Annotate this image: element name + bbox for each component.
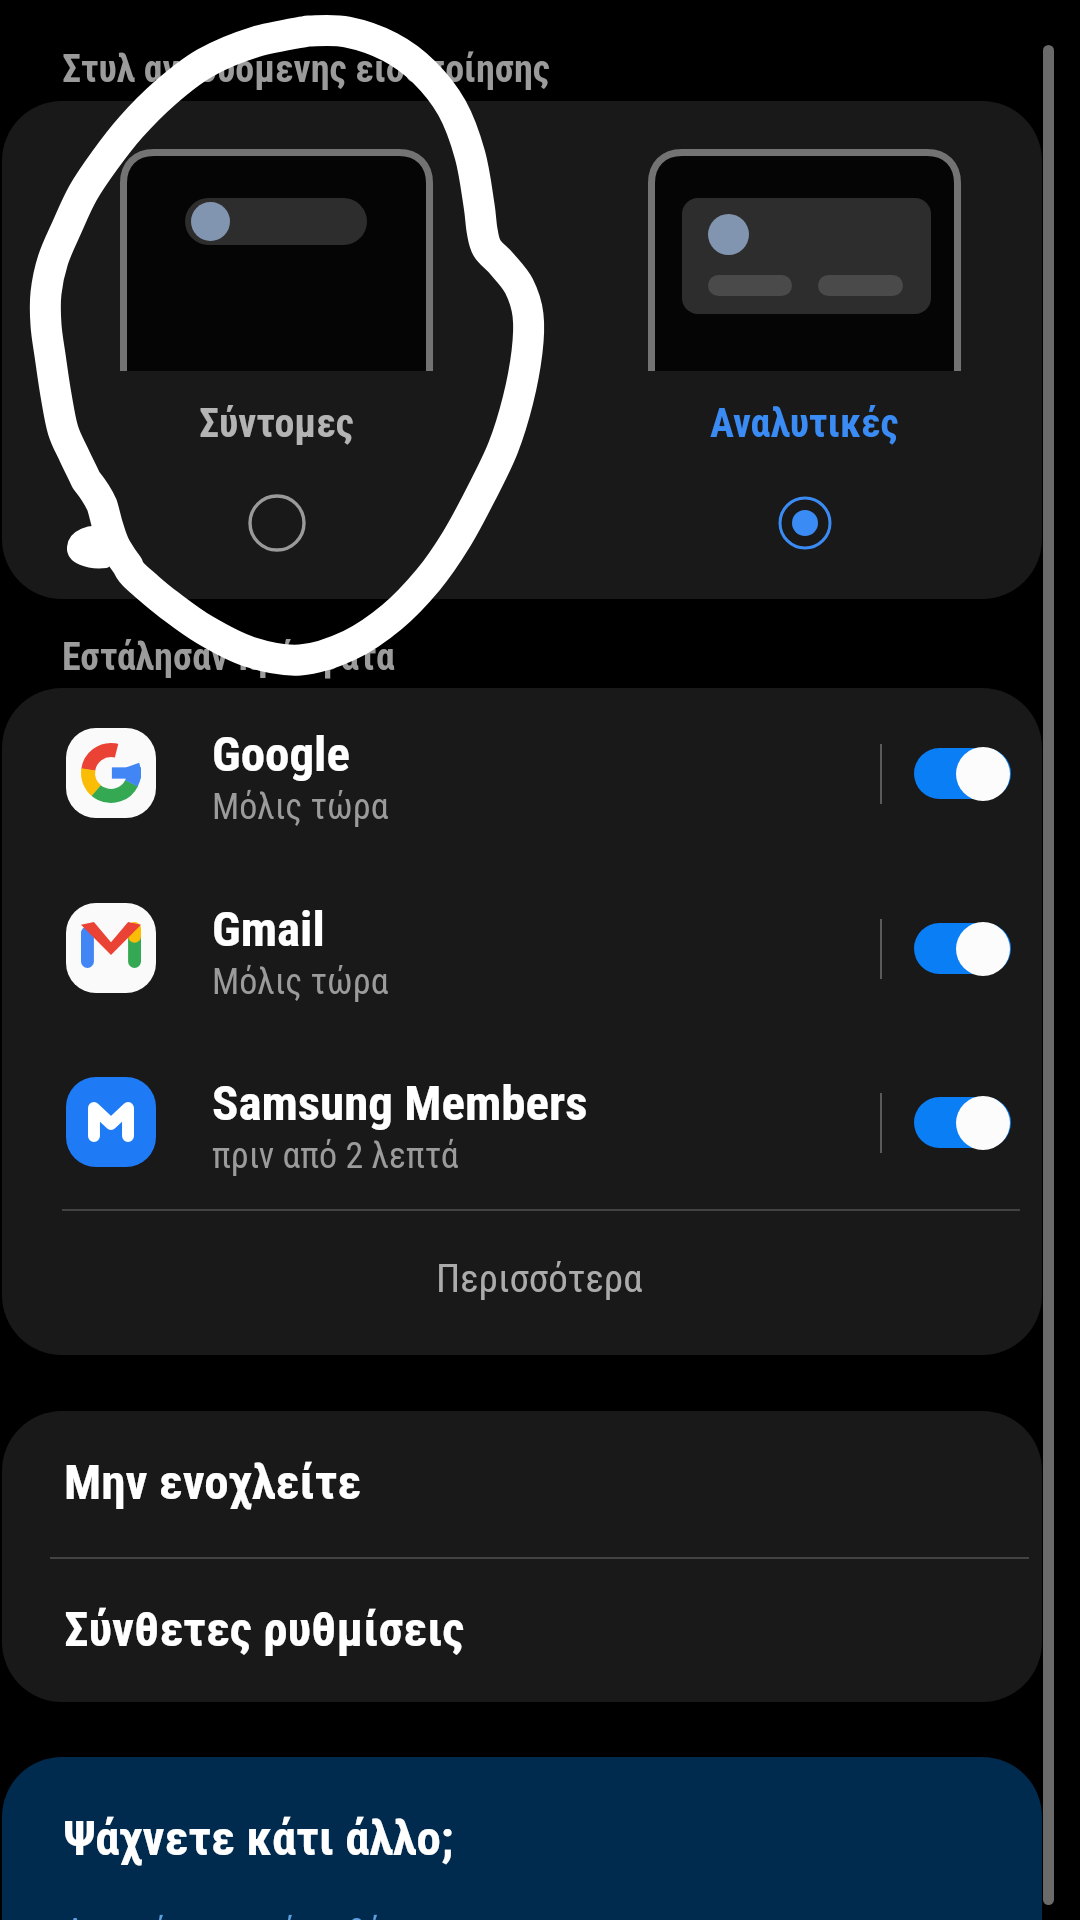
staticText: Samsung Members bbox=[212, 1075, 588, 1132]
staticText: Δοκιμάστε αυτά τα θέματα bbox=[64, 1911, 453, 1920]
staticText: Αναλυτικές bbox=[710, 400, 899, 447]
staticText: πριν από 2 λεπτά bbox=[212, 1135, 459, 1177]
button[interactable]: Toggle notifications for Google bbox=[910, 733, 1016, 817]
staticText: Μόλις τώρα bbox=[212, 786, 389, 828]
button[interactable]: Περισσότερα bbox=[2, 1211, 1042, 1355]
button[interactable]: Σύντομες bbox=[60, 101, 493, 599]
button[interactable]: Toggle notifications for Samsung Members bbox=[910, 1082, 1016, 1166]
staticText: Gmail bbox=[212, 901, 325, 958]
staticText: Google bbox=[212, 726, 350, 783]
button[interactable]: Samsung Members bbox=[2, 1079, 1042, 1253]
button[interactable]: Μην ενοχλείτε bbox=[2, 1411, 1042, 1558]
button[interactable]: Gmail bbox=[2, 905, 1042, 1079]
staticText: Σύντομες bbox=[199, 400, 354, 447]
staticText: Εστάλησαν πρόσφατα bbox=[62, 635, 395, 680]
button[interactable]: Σύνθετες ρυθμίσεις bbox=[2, 1560, 1042, 1702]
button[interactable]: Ψάχνετε κάτι άλλο; bbox=[2, 1757, 1042, 1920]
button[interactable]: Αναλυτικές bbox=[588, 101, 1021, 599]
staticText: Μην ενοχλείτε bbox=[64, 1454, 362, 1511]
staticText: Σύνθετες ρυθμίσεις bbox=[64, 1601, 465, 1658]
button[interactable]: Toggle notifications for Gmail bbox=[910, 908, 1016, 992]
button[interactable]: Google bbox=[2, 730, 1042, 904]
staticText: Στυλ αναδυόμενης ειδοποίησης bbox=[62, 47, 550, 92]
staticText: Περισσότερα bbox=[436, 1256, 643, 1302]
staticText: Μόλις τώρα bbox=[212, 961, 389, 1003]
staticText: Ψάχνετε κάτι άλλο; bbox=[64, 1810, 454, 1867]
